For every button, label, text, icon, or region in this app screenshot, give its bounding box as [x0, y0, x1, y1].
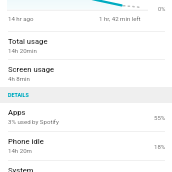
button[interactable]: Phone idle: [0, 132, 172, 160]
staticText: 14h 20min: [8, 47, 37, 54]
button[interactable]: Screen usage: [0, 60, 172, 87]
staticText: System: [8, 166, 34, 172]
staticText: DETAILS: [8, 92, 29, 98]
staticText: 3% used by Spotify: [8, 118, 59, 125]
staticText: 1 hr, 42 min left: [99, 15, 141, 22]
staticText: 14 hr ago: [8, 15, 34, 22]
staticText: Phone idle: [8, 137, 44, 146]
button[interactable]: System: [0, 161, 172, 172]
staticText: 0%: [158, 6, 166, 13]
staticText: 55%: [154, 114, 166, 121]
staticText: 4h 8min: [8, 75, 30, 82]
staticText: 18%: [154, 143, 166, 150]
button[interactable]: Total usage: [0, 32, 172, 59]
button[interactable]: Apps: [0, 103, 172, 131]
staticText: 14h 20m: [8, 147, 32, 154]
staticText: Apps: [8, 108, 26, 117]
staticText: Total usage: [8, 37, 48, 46]
staticText: Screen usage: [8, 65, 55, 74]
